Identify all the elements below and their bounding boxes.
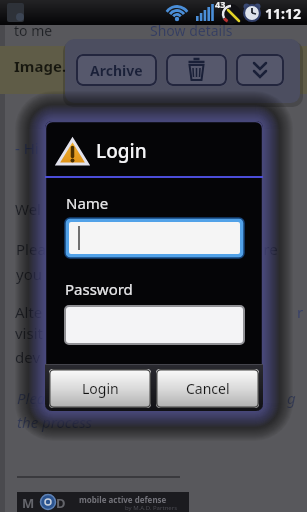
- staticText: Login: [82, 379, 119, 398]
- button[interactable]: [65, 218, 244, 258]
- staticText: ure: [254, 239, 278, 259]
- button[interactable]: Login: [49, 369, 151, 408]
- staticText: by M.A.D. Partners: [125, 504, 178, 512]
- staticText: Wel: [15, 199, 41, 219]
- staticText: you: [16, 264, 42, 284]
- staticText: 43: [215, 0, 226, 10]
- staticText: D: [56, 494, 66, 512]
- button[interactable]: Archive: [76, 54, 157, 86]
- button[interactable]: [166, 54, 227, 86]
- staticText: to me: [14, 21, 53, 40]
- button[interactable]: [65, 306, 244, 344]
- staticText: r: [297, 302, 304, 322]
- staticText: visit: [15, 323, 43, 343]
- staticText: the process: [17, 412, 93, 432]
- staticText: Plea: [17, 388, 46, 408]
- staticText: M: [22, 494, 35, 512]
- staticText: mobile active defense: [79, 494, 167, 505]
- staticText: Archive: [90, 61, 143, 80]
- staticText: Image...: [14, 56, 75, 76]
- button[interactable]: Show details: [150, 21, 233, 40]
- staticText: Cancel: [186, 379, 230, 398]
- button[interactable]: [236, 54, 284, 86]
- staticText: 11:12: [265, 4, 301, 23]
- staticText: Login: [96, 138, 147, 164]
- staticText: - Hi: [15, 138, 39, 158]
- staticText: dev: [15, 347, 41, 367]
- staticText: Password: [65, 279, 133, 299]
- staticText: Name: [66, 193, 109, 213]
- button[interactable]: Cancel: [156, 369, 259, 408]
- staticText: Plea: [16, 239, 46, 259]
- staticText: Alte: [15, 302, 43, 322]
- staticText: g: [287, 388, 296, 408]
